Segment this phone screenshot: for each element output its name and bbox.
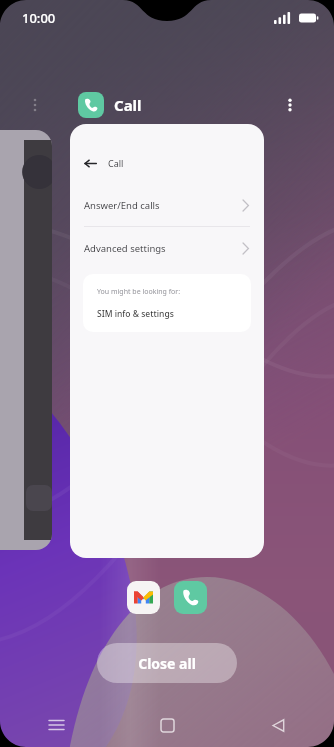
staticText: SIM info & settings [97,308,174,320]
button[interactable]: 13 [0,130,52,550]
button[interactable]: Home [112,703,223,747]
button[interactable]: Advanced settings [70,227,264,269]
staticText: Advanced settings [84,242,166,255]
button[interactable]: Phone [174,581,207,614]
staticText: Close all [138,654,196,673]
staticText: 10:00 [22,9,56,27]
button[interactable]: Answer/End calls [70,184,264,226]
button[interactable]: Back [70,151,264,175]
staticText: Call [108,157,124,169]
button[interactable]: More options [278,93,302,117]
staticText: Answer/End calls [84,199,160,212]
button[interactable]: Close all [97,643,237,683]
other: Back [84,157,97,170]
button[interactable]: Gmail [127,581,160,614]
button[interactable]: Recent apps [0,703,112,747]
button[interactable]: Call [78,92,142,118]
button[interactable]: Back [70,124,264,558]
button[interactable]: Back [223,703,334,747]
staticText: Call [114,95,142,115]
button[interactable]: You might be looking for: [83,274,251,332]
staticText: You might be looking for: [97,287,181,297]
